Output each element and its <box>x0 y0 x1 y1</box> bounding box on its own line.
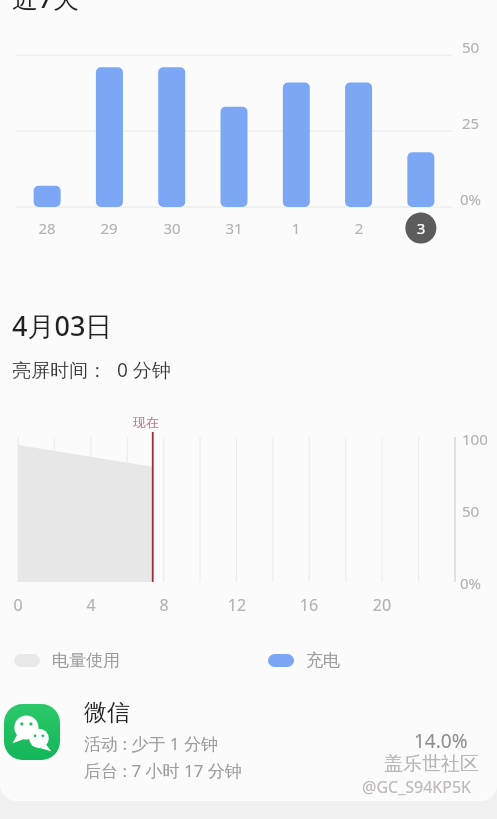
staticText: 29 <box>89 218 129 238</box>
staticText: 31 <box>214 218 254 238</box>
staticText: 14.0% <box>414 728 468 754</box>
button[interactable]: 3 <box>401 218 441 238</box>
button[interactable]: 微信 <box>0 696 497 796</box>
button[interactable]: 30 <box>152 218 192 238</box>
button[interactable]: 电量使用 <box>12 646 122 675</box>
other: 微信 <box>4 704 60 760</box>
staticText: 0% <box>460 573 482 593</box>
staticText: 0 <box>0 594 38 616</box>
button[interactable]: 31 <box>214 218 254 238</box>
staticText: 亮屏时间： 0 分钟 <box>12 357 171 383</box>
staticText: 16 <box>289 594 329 616</box>
staticText: 现在 <box>133 414 159 430</box>
button[interactable]: 28 <box>27 218 67 238</box>
staticText: 近7天 <box>12 0 79 16</box>
staticText: 4 <box>71 594 111 616</box>
staticText: 活动 : 少于 1 分钟 <box>84 732 218 755</box>
button[interactable]: 充电 <box>266 646 342 675</box>
staticText: 微信 <box>84 698 130 727</box>
staticText: 28 <box>27 218 67 238</box>
staticText: 8 <box>144 594 184 616</box>
staticText: 25 <box>462 113 480 133</box>
button[interactable]: 29 <box>89 218 129 238</box>
staticText: 30 <box>152 218 192 238</box>
staticText: 50 <box>462 37 480 57</box>
staticText: 50 <box>462 501 480 521</box>
staticText: 2 <box>339 218 379 238</box>
staticText: 后台 : 7 小时 17 分钟 <box>84 759 242 782</box>
staticText: 100 <box>462 429 488 449</box>
button[interactable]: 1 <box>276 218 316 238</box>
staticText: 盖乐世社区 <box>384 752 479 776</box>
staticText: 4月03日 <box>12 307 113 344</box>
staticText: 0% <box>460 189 482 209</box>
staticText: @GC_S94KP5K <box>362 776 471 798</box>
staticText: 1 <box>276 218 316 238</box>
staticText: 3 <box>401 218 441 238</box>
button[interactable]: 2 <box>339 218 379 238</box>
staticText: 12 <box>217 594 257 616</box>
staticText: 电量使用 <box>52 650 120 671</box>
staticText: 充电 <box>306 650 340 671</box>
staticText: 20 <box>362 594 402 616</box>
